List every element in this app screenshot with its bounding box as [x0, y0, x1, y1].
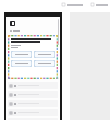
button[interactable]: Model — [90, 2, 109, 7]
button[interactable] — [8, 109, 58, 116]
button[interactable]: App logo — [10, 21, 15, 26]
button[interactable] — [11, 51, 32, 58]
button[interactable] — [11, 60, 32, 67]
button[interactable] — [8, 91, 58, 98]
button[interactable] — [8, 82, 58, 89]
button[interactable]: Compose — [61, 2, 84, 7]
button[interactable] — [34, 51, 55, 58]
button[interactable] — [34, 60, 55, 67]
button[interactable] — [8, 35, 58, 79]
button[interactable] — [8, 100, 58, 107]
